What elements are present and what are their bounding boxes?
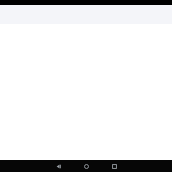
button[interactable]: Home [72,160,100,172]
button[interactable]: Back [44,160,72,172]
button[interactable]: Recent apps [100,160,128,172]
